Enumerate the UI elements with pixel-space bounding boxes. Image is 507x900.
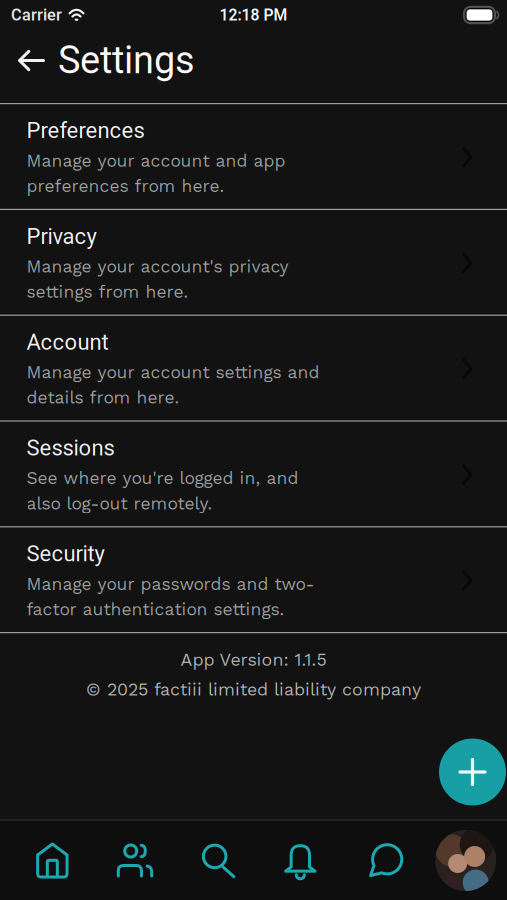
staticText: 12:18 PM bbox=[219, 6, 287, 24]
staticText: Manage your account's privacy settings f… bbox=[26, 256, 288, 302]
staticText: Settings bbox=[58, 38, 195, 82]
button[interactable]: Account bbox=[0, 316, 507, 422]
button[interactable]: Search bbox=[176, 843, 259, 877]
staticText: © 2025 factiii limited liability company bbox=[86, 679, 421, 700]
button[interactable]: Notifications bbox=[259, 842, 342, 878]
staticText: App Version: 1.1.5 bbox=[180, 649, 326, 670]
button[interactable]: Back bbox=[0, 49, 58, 83]
staticText: See where you're logged in, and also log… bbox=[26, 468, 298, 514]
staticText: Manage your account settings and details… bbox=[26, 362, 319, 408]
button[interactable]: Sessions bbox=[0, 422, 507, 527]
button[interactable]: Preferences bbox=[0, 104, 507, 210]
staticText: Preferences bbox=[26, 118, 144, 143]
staticText: Manage your account and app preferences … bbox=[26, 150, 285, 196]
staticText: Privacy bbox=[26, 223, 96, 249]
staticText: Account bbox=[26, 329, 108, 355]
staticText: Manage your passwords and two- factor au… bbox=[26, 574, 314, 619]
staticText: Security bbox=[26, 541, 104, 567]
button[interactable]: Privacy bbox=[0, 210, 507, 316]
staticText: Carrier bbox=[11, 5, 62, 25]
button[interactable]: Friends bbox=[94, 843, 176, 877]
button[interactable]: Messages bbox=[342, 843, 424, 878]
button[interactable]: Add bbox=[439, 738, 506, 805]
button[interactable]: Security bbox=[0, 527, 507, 633]
staticText: Sessions bbox=[26, 435, 114, 461]
button[interactable]: Profile bbox=[424, 830, 507, 891]
button[interactable]: Home bbox=[11, 842, 94, 878]
